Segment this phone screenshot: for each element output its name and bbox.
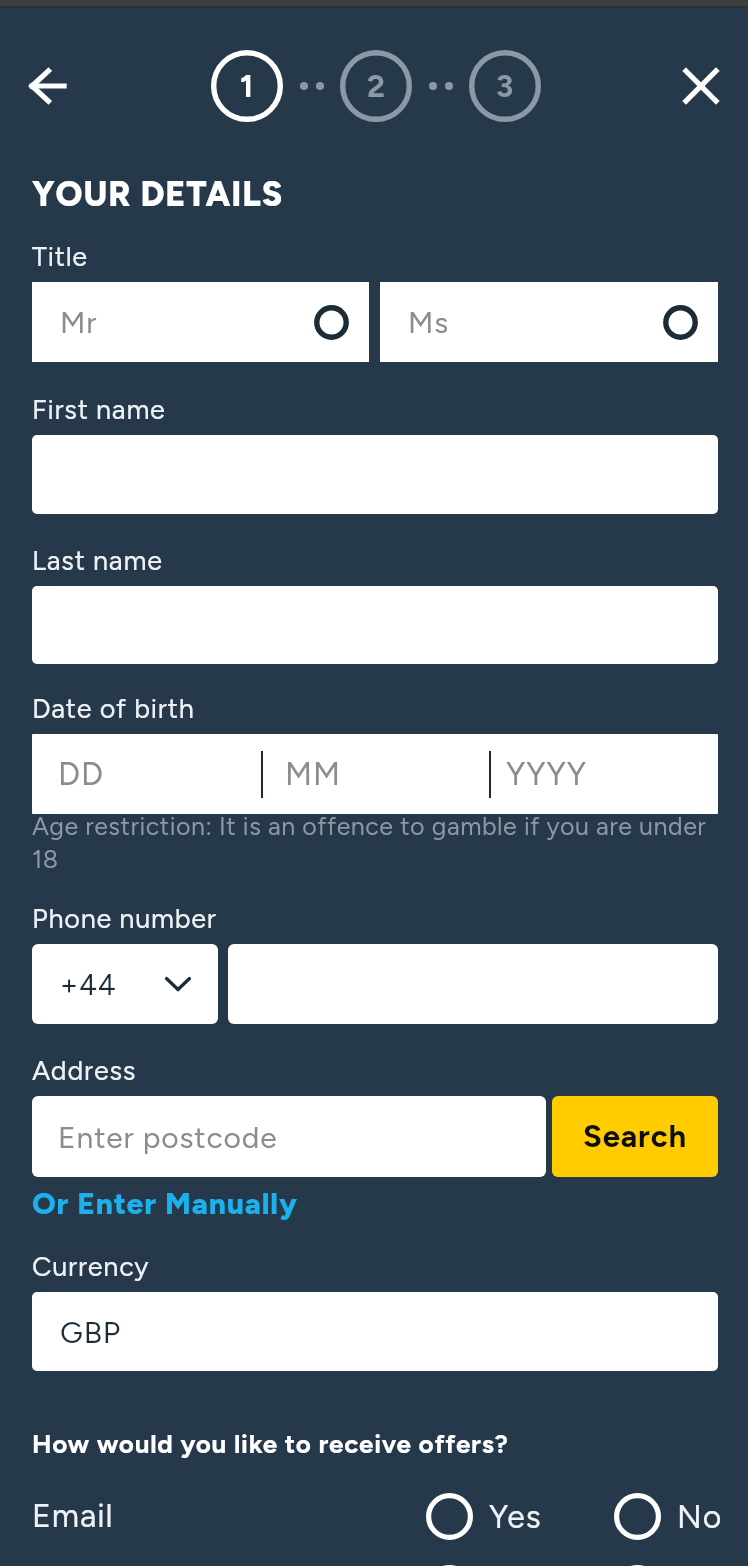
staticText: Ms bbox=[408, 304, 450, 340]
staticText: Enter postcode bbox=[58, 1119, 278, 1155]
button[interactable] bbox=[32, 586, 718, 664]
staticText: First name bbox=[32, 393, 166, 425]
button[interactable]: Mr bbox=[32, 282, 369, 362]
staticText: GBP bbox=[60, 1314, 122, 1350]
button[interactable]: 1 bbox=[211, 50, 283, 122]
button[interactable]: Search bbox=[552, 1096, 718, 1177]
button[interactable]: Close bbox=[667, 52, 735, 120]
staticText: Or Enter Manually bbox=[32, 1185, 298, 1221]
button[interactable]: Yes bbox=[426, 1565, 542, 1566]
staticText: 3 bbox=[496, 68, 515, 105]
staticText: How would you like to receive offers? bbox=[32, 1428, 509, 1459]
staticText: No bbox=[677, 1498, 723, 1536]
button[interactable]: Yes bbox=[426, 1493, 542, 1540]
staticText: YOUR DETAILS bbox=[32, 174, 284, 215]
staticText: 1 bbox=[240, 68, 254, 105]
button[interactable]: Ms bbox=[380, 282, 718, 362]
button[interactable]: 3 bbox=[469, 50, 541, 122]
staticText: 2 bbox=[367, 68, 386, 105]
staticText: MM bbox=[285, 755, 341, 793]
staticText: Mr bbox=[60, 304, 98, 340]
staticText: Title bbox=[32, 240, 88, 272]
staticText: +44 bbox=[60, 967, 117, 1002]
staticText: YYYY bbox=[506, 755, 587, 793]
staticText: Email bbox=[32, 1497, 114, 1535]
button[interactable] bbox=[228, 944, 718, 1024]
button[interactable] bbox=[32, 435, 718, 514]
staticText: Last name bbox=[32, 544, 163, 576]
button[interactable]: Back bbox=[12, 50, 84, 122]
staticText: DD bbox=[58, 755, 104, 793]
staticText: Phone number bbox=[32, 902, 217, 934]
staticText: Yes bbox=[489, 1498, 542, 1536]
button[interactable]: Or Enter Manually bbox=[32, 1185, 298, 1221]
staticText: Currency bbox=[32, 1250, 150, 1282]
staticText: Address bbox=[32, 1054, 137, 1086]
button[interactable]: No bbox=[614, 1565, 723, 1566]
button[interactable]: MM bbox=[263, 734, 489, 814]
staticText: Age restriction: It is an offence to gam… bbox=[32, 811, 722, 874]
button[interactable]: No bbox=[614, 1493, 723, 1540]
button[interactable]: 2 bbox=[340, 50, 412, 122]
staticText: Date of birth bbox=[32, 692, 195, 724]
staticText: Search bbox=[583, 1118, 688, 1155]
button[interactable]: +44 bbox=[32, 944, 218, 1024]
button[interactable]: GBP bbox=[32, 1292, 718, 1371]
button[interactable]: Enter postcode bbox=[32, 1096, 546, 1177]
button[interactable]: YYYY bbox=[491, 734, 718, 814]
button[interactable]: DD bbox=[32, 734, 261, 814]
